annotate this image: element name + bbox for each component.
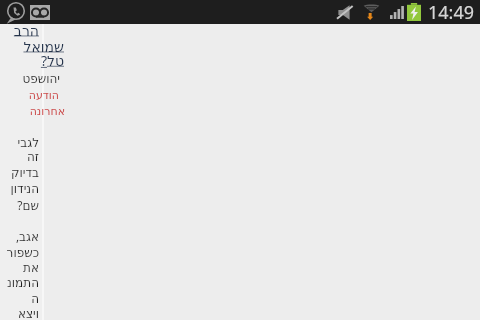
button[interactable]: אחרונה: [0, 105, 65, 118]
button[interactable]: שם?: [0, 197, 39, 213]
button[interactable]: התמונ: [0, 276, 39, 290]
other: Voicemail: [30, 5, 50, 20]
button[interactable]: טל?: [0, 51, 64, 70]
staticText: כשפור: [6, 246, 39, 260]
button[interactable]: יהושפט: [0, 72, 60, 86]
other: Mobile signal: [390, 6, 405, 19]
button[interactable]: שמואל: [0, 39, 64, 55]
staticText: אגב,: [15, 228, 39, 244]
staticText: התמונ: [7, 276, 39, 290]
button[interactable]: הודעה: [0, 89, 59, 102]
staticText: ה: [31, 292, 39, 306]
button[interactable]: זה: [0, 150, 39, 164]
staticText: ויצא: [17, 307, 39, 320]
staticText: את: [23, 261, 39, 275]
staticText: זה: [27, 150, 39, 164]
staticText: בדיוק: [11, 166, 39, 180]
staticText: הנידון: [10, 182, 39, 196]
other: WhatsApp: [7, 2, 25, 23]
other: Battery charging: [407, 3, 421, 21]
button[interactable]: כשפור: [0, 246, 39, 260]
staticText: שם?: [17, 197, 39, 213]
button[interactable]: הרב: [0, 23, 39, 39]
other: Wi-Fi: [363, 4, 380, 20]
staticText: שמואל: [23, 39, 64, 55]
staticText: הרב: [13, 23, 39, 39]
staticText: אחרונה: [29, 105, 65, 118]
button[interactable]: את: [0, 261, 39, 275]
button[interactable]: אגב,: [0, 228, 39, 244]
staticText: 14:49: [428, 0, 475, 24]
staticText: טל?: [40, 51, 64, 70]
button[interactable]: ויצא: [0, 307, 39, 320]
button[interactable]: הנידון: [0, 182, 39, 196]
staticText: לגבי: [17, 136, 39, 150]
other: Silent mode: [336, 5, 353, 20]
staticText: יהושפט: [22, 72, 60, 86]
button[interactable]: בדיוק: [0, 166, 39, 180]
staticText: הודעה: [28, 89, 59, 102]
button[interactable]: לגבי: [0, 136, 39, 150]
button[interactable]: ה: [0, 292, 39, 306]
